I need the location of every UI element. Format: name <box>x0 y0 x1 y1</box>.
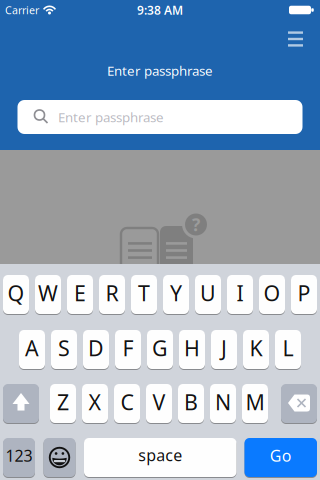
button[interactable]: Go <box>244 437 317 477</box>
staticText: S <box>58 334 70 362</box>
staticText: P <box>297 279 310 307</box>
button[interactable]: E <box>67 274 93 314</box>
staticText: I <box>236 279 243 307</box>
staticText: ? <box>192 213 200 236</box>
staticText: space <box>138 444 182 466</box>
button[interactable]: Enter passphrase <box>17 100 302 134</box>
staticText: M <box>245 388 264 416</box>
button[interactable]: B <box>178 383 204 423</box>
button[interactable]: A <box>19 329 45 369</box>
staticText: A <box>25 334 39 362</box>
button[interactable]: X <box>82 383 108 423</box>
button[interactable]: Menu <box>281 26 309 52</box>
button[interactable]: D <box>83 329 109 369</box>
button[interactable]: R <box>99 274 125 314</box>
staticText: 9:38 AM <box>137 2 183 18</box>
staticText: L <box>282 334 293 362</box>
button[interactable]: N <box>210 383 236 423</box>
button[interactable]: Q <box>3 274 29 314</box>
button[interactable]: G <box>147 329 173 369</box>
staticText: H <box>184 334 200 362</box>
staticText: C <box>120 388 133 416</box>
staticText: W <box>38 279 58 307</box>
staticText: V <box>152 388 165 416</box>
staticText: U <box>200 279 216 307</box>
button[interactable]: Emoji <box>43 437 75 477</box>
staticText: Z <box>57 388 69 416</box>
staticText: Q <box>7 279 24 307</box>
button[interactable]: Delete <box>281 383 317 423</box>
button[interactable]: J <box>211 329 237 369</box>
button[interactable]: C <box>114 383 140 423</box>
button[interactable]: P <box>291 274 317 314</box>
button[interactable]: V <box>146 383 172 423</box>
staticText: G <box>152 334 168 362</box>
button[interactable]: W <box>35 274 61 314</box>
staticText: B <box>184 388 198 416</box>
button[interactable]: L <box>275 329 301 369</box>
button[interactable]: Z <box>50 383 76 423</box>
staticText: T <box>138 279 150 307</box>
button[interactable]: M <box>242 383 268 423</box>
button[interactable]: S <box>51 329 77 369</box>
staticText: J <box>221 334 227 362</box>
staticText: Go <box>270 445 292 466</box>
staticText: E <box>74 279 86 307</box>
button[interactable]: T <box>131 274 157 314</box>
staticText: Carrier <box>5 3 39 17</box>
button[interactable]: Shift <box>3 383 39 423</box>
staticText: N <box>215 388 231 416</box>
button[interactable]: Y <box>163 274 189 314</box>
staticText: 123 <box>5 445 32 466</box>
staticText: O <box>263 279 280 307</box>
staticText: Enter passphrase <box>58 108 164 126</box>
staticText: F <box>122 334 133 362</box>
staticText: Enter passphrase <box>107 62 213 79</box>
staticText: D <box>88 334 104 362</box>
button[interactable]: space <box>84 437 236 477</box>
button[interactable]: 123 <box>3 437 35 477</box>
button[interactable]: F <box>115 329 141 369</box>
staticText: Y <box>170 279 182 307</box>
button[interactable]: U <box>195 274 221 314</box>
staticText: X <box>88 388 101 416</box>
button[interactable]: H <box>179 329 205 369</box>
button[interactable]: O <box>259 274 285 314</box>
staticText: R <box>105 279 118 307</box>
button[interactable]: K <box>243 329 269 369</box>
staticText: K <box>249 334 262 362</box>
button[interactable]: I <box>227 274 253 314</box>
